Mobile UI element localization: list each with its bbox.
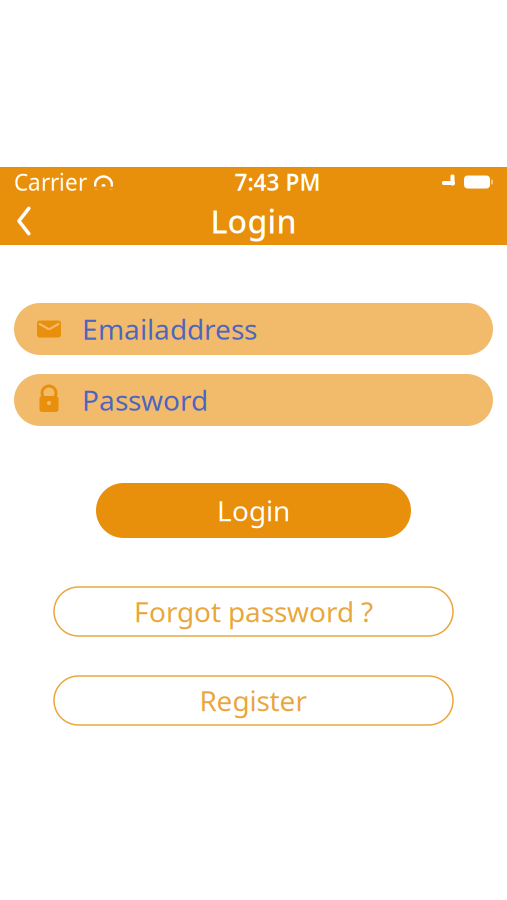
staticText: Emailaddress: [82, 310, 257, 348]
button[interactable]: Forgot password ?: [54, 587, 453, 636]
button[interactable]: Password: [0, 374, 507, 426]
staticText: Carrier: [14, 167, 87, 197]
button[interactable]: Emailaddress: [0, 303, 507, 355]
staticText: Login: [210, 200, 296, 242]
button[interactable]: Back: [0, 197, 48, 245]
button[interactable]: Login: [96, 483, 411, 538]
staticText: Password: [82, 381, 208, 419]
staticText: Login: [217, 492, 290, 529]
button[interactable]: Register: [54, 676, 453, 725]
staticText: Register: [199, 682, 307, 719]
staticText: 7:43 PM: [234, 167, 320, 197]
staticText: Forgot password ?: [134, 593, 373, 630]
